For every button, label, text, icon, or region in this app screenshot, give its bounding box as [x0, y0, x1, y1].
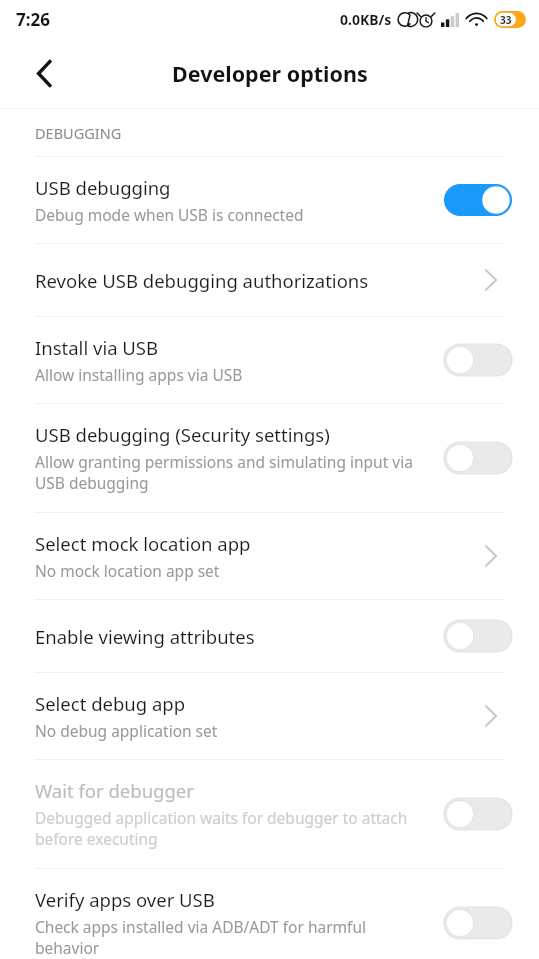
button[interactable]: Toggle off: [443, 796, 513, 832]
button[interactable]: Back: [20, 49, 68, 97]
staticText: Select debug app: [35, 691, 186, 716]
button[interactable]: Toggle on: [443, 182, 513, 218]
button[interactable]: Select debug app: [0, 673, 539, 759]
staticText: USB debugging: [35, 175, 171, 200]
button[interactable]: Open: [469, 262, 513, 298]
staticText: Enable viewing attributes: [35, 624, 255, 649]
staticText: Debugged application waits for debugger …: [35, 807, 431, 850]
staticText: 33: [500, 13, 512, 27]
staticText: Debug mode when USB is connected: [35, 204, 304, 225]
button[interactable]: Toggle off: [443, 440, 513, 476]
button[interactable]: Revoke USB debugging authorizations: [0, 244, 539, 316]
button[interactable]: Wait for debugger: [0, 760, 539, 868]
staticText: No mock location app set: [35, 560, 220, 581]
staticText: USB debugging (Security settings): [35, 422, 330, 447]
button[interactable]: USB debugging: [0, 157, 539, 243]
staticText: Install via USB: [35, 335, 159, 360]
staticText: Wait for debugger: [35, 778, 194, 803]
button[interactable]: USB debugging (Security settings): [0, 404, 539, 512]
button[interactable]: Toggle off: [443, 905, 513, 941]
staticText: 0.0KB/s: [340, 10, 392, 29]
staticText: Select mock location app: [35, 531, 251, 556]
button[interactable]: Install via USB: [0, 317, 539, 403]
staticText: Allow granting permissions and simulatin…: [35, 451, 431, 494]
staticText: DEBUGGING: [35, 123, 122, 143]
button[interactable]: Open: [469, 538, 513, 574]
button[interactable]: Toggle off: [443, 342, 513, 378]
button[interactable]: Open: [469, 698, 513, 734]
staticText: Allow installing apps via USB: [35, 364, 243, 385]
button[interactable]: Select mock location app: [0, 513, 539, 599]
button[interactable]: Enable viewing attributes: [0, 600, 539, 672]
button[interactable]: Toggle off: [443, 618, 513, 654]
staticText: Developer options: [172, 59, 368, 88]
staticText: No debug application set: [35, 720, 218, 741]
button[interactable]: Verify apps over USB: [0, 869, 539, 959]
staticText: Revoke USB debugging authorizations: [35, 268, 369, 293]
staticText: 7:26: [16, 8, 50, 31]
staticText: Verify apps over USB: [35, 887, 215, 912]
staticText: Check apps installed via ADB/ADT for har…: [35, 916, 431, 959]
